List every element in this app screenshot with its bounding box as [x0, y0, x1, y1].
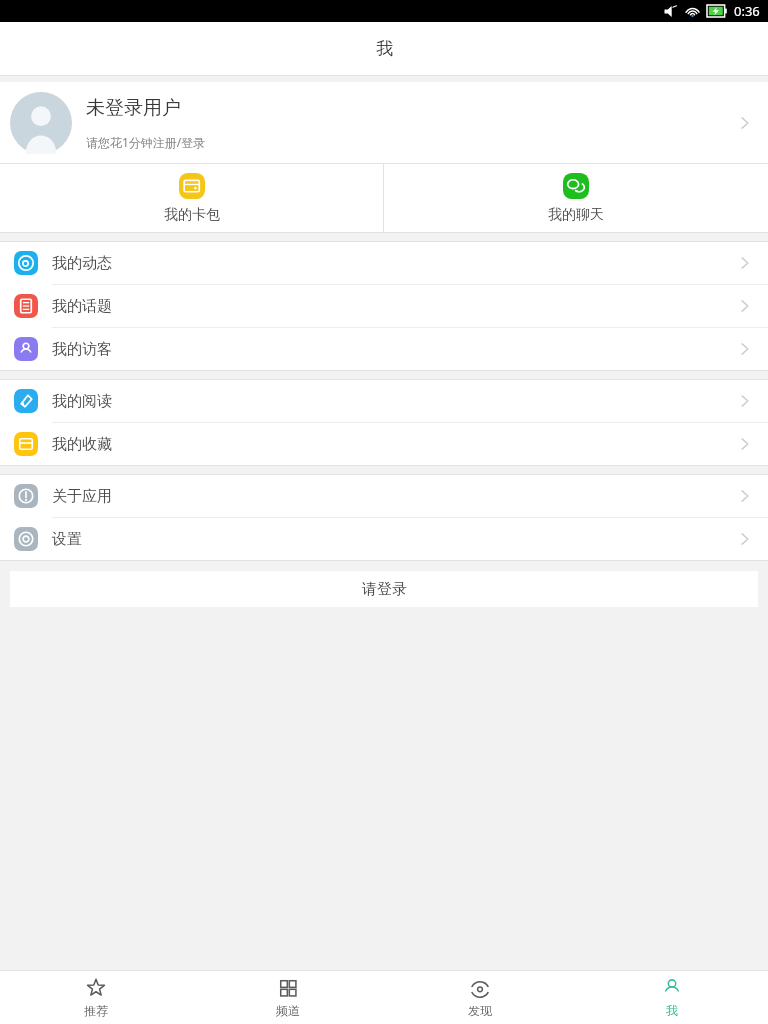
staticText: 请您花1分钟注册/登录	[86, 134, 206, 150]
staticText: 我的动态	[52, 254, 736, 273]
button[interactable]: 我的访客	[0, 328, 768, 370]
staticText: 请登录	[362, 580, 407, 599]
staticText: 我的收藏	[52, 435, 736, 454]
staticText: 发现	[468, 1003, 492, 1018]
button[interactable]: 我的阅读	[0, 380, 768, 422]
button[interactable]: 请登录	[10, 571, 758, 607]
button[interactable]: 我的收藏	[0, 423, 768, 465]
staticText: 0:36	[734, 2, 760, 20]
button[interactable]: 我的话题	[0, 285, 768, 327]
staticText: 我的话题	[52, 297, 736, 316]
staticText: 我	[376, 38, 393, 59]
staticText: 推荐	[84, 1003, 108, 1018]
button[interactable]: 频道	[192, 971, 384, 1024]
button[interactable]: 发现	[384, 971, 576, 1024]
button[interactable]: 推荐	[0, 971, 192, 1024]
staticText: 我的阅读	[52, 392, 736, 411]
button[interactable]: 未登录用户	[0, 82, 768, 163]
staticText: 关于应用	[52, 487, 736, 506]
button[interactable]: 我的卡包	[0, 164, 383, 232]
button[interactable]: 设置	[0, 518, 768, 560]
staticText: 频道	[276, 1003, 300, 1018]
staticText: 我	[666, 1003, 678, 1018]
button[interactable]: 我	[576, 971, 768, 1024]
staticText: 我的访客	[52, 340, 736, 359]
staticText: 我的聊天	[548, 206, 604, 224]
button[interactable]: 我的动态	[0, 242, 768, 284]
button[interactable]: 我的聊天	[384, 164, 768, 232]
staticText: 未登录用户	[86, 96, 181, 120]
button[interactable]: 关于应用	[0, 475, 768, 517]
staticText: 我的卡包	[164, 206, 220, 224]
staticText: 设置	[52, 530, 736, 549]
